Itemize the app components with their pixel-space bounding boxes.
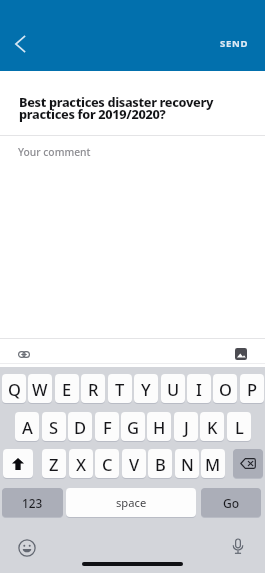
button[interactable]: R: [81, 374, 105, 403]
button[interactable]: T: [108, 374, 132, 403]
button[interactable]: D: [68, 412, 92, 441]
button[interactable]: J: [174, 412, 198, 441]
button[interactable]: Voice input: [231, 538, 245, 555]
staticText: space: [116, 495, 147, 510]
staticText: Z: [49, 453, 59, 475]
staticText: U: [167, 378, 180, 400]
button[interactable]: Attach link: [10, 341, 38, 367]
staticText: Your comment: [18, 145, 91, 159]
button[interactable]: L: [227, 412, 251, 441]
button[interactable]: W: [28, 374, 52, 403]
button[interactable]: N: [175, 449, 199, 478]
button[interactable]: G: [121, 412, 145, 441]
staticText: SEND: [220, 37, 249, 50]
button[interactable]: Q: [2, 374, 26, 403]
button[interactable]: 123: [2, 488, 63, 517]
staticText: N: [181, 453, 194, 475]
staticText: Best practices disaster recovery practic…: [19, 93, 255, 123]
button[interactable]: SEND: [208, 28, 260, 58]
button[interactable]: K: [200, 412, 224, 441]
button[interactable]: Attach image: [227, 341, 255, 367]
staticText: G: [127, 416, 139, 438]
button[interactable]: A: [15, 412, 39, 441]
staticText: L: [235, 416, 244, 438]
staticText: H: [153, 416, 166, 438]
button[interactable]: C: [95, 449, 119, 478]
button[interactable]: Emoji keyboard: [18, 539, 36, 557]
button[interactable]: B: [148, 449, 172, 478]
button[interactable]: F: [95, 412, 119, 441]
button[interactable]: S: [42, 412, 66, 441]
staticText: Go: [223, 495, 240, 511]
button[interactable]: V: [122, 449, 146, 478]
staticText: Q: [8, 378, 21, 400]
button[interactable]: I: [187, 374, 211, 403]
staticText: D: [74, 416, 87, 438]
staticText: V: [129, 453, 140, 475]
staticText: K: [207, 416, 218, 438]
button[interactable]: space: [66, 488, 196, 517]
staticText: Y: [141, 378, 151, 400]
staticText: A: [22, 416, 33, 438]
staticText: O: [219, 378, 232, 400]
button[interactable]: Z: [42, 449, 66, 478]
button[interactable]: H: [147, 412, 171, 441]
staticText: S: [49, 416, 59, 438]
staticText: 123: [22, 495, 43, 511]
button[interactable]: Back: [5, 29, 35, 59]
staticText: P: [247, 378, 258, 400]
staticText: T: [115, 378, 125, 400]
staticText: W: [32, 378, 48, 400]
staticText: M: [205, 453, 221, 475]
staticText: F: [103, 416, 112, 438]
button[interactable]: Go: [201, 488, 261, 517]
staticText: X: [76, 453, 87, 475]
button[interactable]: Y: [134, 374, 158, 403]
button[interactable]: E: [55, 374, 79, 403]
staticText: R: [88, 378, 99, 400]
staticText: J: [184, 416, 189, 438]
staticText: C: [102, 453, 113, 475]
staticText: B: [155, 453, 166, 475]
button[interactable]: P: [240, 374, 264, 403]
button[interactable]: [233, 449, 263, 478]
staticText: E: [62, 378, 72, 400]
button[interactable]: X: [69, 449, 93, 478]
button[interactable]: U: [161, 374, 185, 403]
button[interactable]: M: [201, 449, 225, 478]
button[interactable]: [3, 449, 33, 478]
staticText: I: [196, 378, 202, 400]
button[interactable]: O: [213, 374, 237, 403]
